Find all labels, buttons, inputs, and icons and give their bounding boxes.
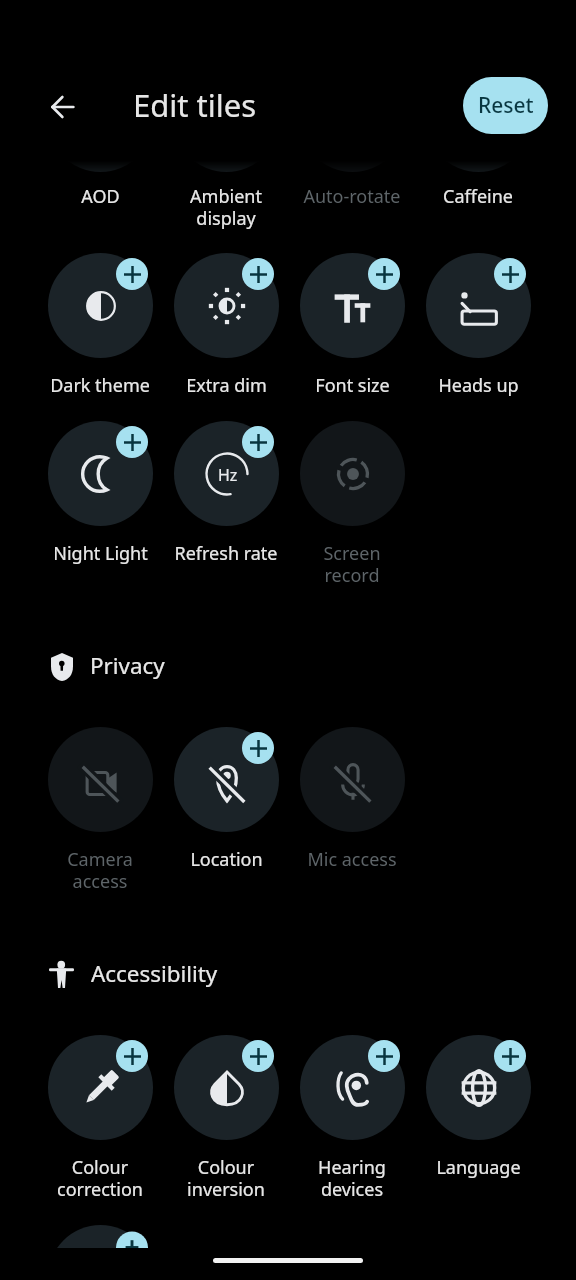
- staticText: Hz: [218, 464, 238, 486]
- staticText: Night Light: [53, 541, 148, 566]
- staticText: Privacy: [90, 650, 165, 681]
- button[interactable]: Hearing devices: [289, 1035, 415, 1201]
- button[interactable]: Heads up: [415, 253, 541, 398]
- staticText: Ambient display: [190, 184, 262, 230]
- button[interactable]: Mic access: [289, 727, 415, 872]
- staticText: Dark theme: [50, 373, 150, 398]
- staticText: Reset: [478, 91, 534, 120]
- staticText: Camera access: [67, 847, 133, 893]
- staticText: Edit tiles: [133, 84, 257, 126]
- staticText: Heads up: [438, 373, 519, 398]
- staticText: Auto-rotate: [303, 184, 401, 209]
- button[interactable]: Camera access: [37, 727, 163, 893]
- button[interactable]: Extra dim: [163, 253, 289, 398]
- staticText: Caffeine: [443, 184, 513, 209]
- button[interactable]: Hz: [163, 421, 289, 566]
- staticText: Language: [436, 1155, 521, 1180]
- button[interactable]: Font size: [289, 253, 415, 398]
- staticText: Font size: [315, 373, 390, 398]
- button[interactable]: Screen record: [289, 421, 415, 587]
- button[interactable]: Colour inversion: [163, 1035, 289, 1201]
- staticText: Accessibility: [91, 958, 218, 989]
- button[interactable]: Back: [38, 83, 86, 131]
- staticText: Colour inversion: [187, 1155, 265, 1201]
- staticText: Location: [190, 847, 263, 872]
- staticText: Screen record: [323, 541, 381, 587]
- button[interactable]: Reset: [463, 77, 548, 134]
- button[interactable]: Location: [163, 727, 289, 872]
- staticText: Extra dim: [186, 373, 267, 398]
- button[interactable]: Night Light: [37, 421, 163, 566]
- staticText: Hearing devices: [318, 1155, 386, 1201]
- staticText: AOD: [81, 184, 120, 209]
- staticText: Mic access: [307, 847, 397, 872]
- button[interactable]: Add tile: [48, 1225, 153, 1248]
- button[interactable]: Dark theme: [37, 253, 163, 398]
- staticText: Refresh rate: [174, 541, 278, 566]
- button[interactable]: Language: [415, 1035, 541, 1180]
- button[interactable]: Colour correction: [37, 1035, 163, 1201]
- staticText: Colour correction: [57, 1155, 143, 1201]
